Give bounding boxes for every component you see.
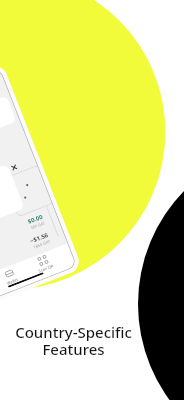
staticText: Scan QR bbox=[38, 263, 54, 274]
staticText: 1860 GAT bbox=[33, 239, 51, 250]
staticText: MP GAT bbox=[30, 220, 46, 230]
button[interactable]: Important bbox=[0, 164, 25, 233]
staticText: Country-Specific Features bbox=[15, 322, 132, 360]
staticText: ~$1.56 bbox=[29, 231, 49, 245]
staticText: $0.00 bbox=[27, 213, 44, 226]
button[interactable]: Close bbox=[10, 164, 18, 171]
button[interactable] bbox=[0, 95, 17, 153]
button[interactable]: Scan QR bbox=[34, 254, 54, 274]
button[interactable] bbox=[2, 165, 53, 218]
button[interactable]: Wallet bbox=[2, 268, 19, 286]
staticText: Wallet bbox=[6, 277, 19, 286]
